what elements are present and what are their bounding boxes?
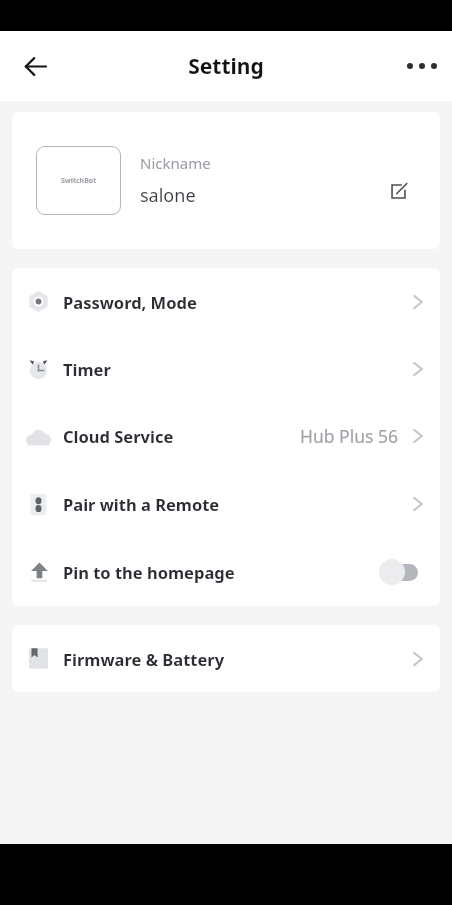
button[interactable]: More options <box>398 42 446 90</box>
button[interactable]: Edit nickname <box>381 174 415 208</box>
staticText: SwitchBot <box>61 176 97 186</box>
staticText: Cloud Service <box>63 425 174 447</box>
button[interactable]: Timer <box>12 335 440 402</box>
button[interactable]: Firmware & Battery <box>12 625 440 692</box>
staticText: Firmware & Battery <box>63 648 225 670</box>
staticText: Nickname <box>140 153 211 173</box>
staticText: Pin to the homepage <box>63 561 235 583</box>
button[interactable]: Pin to the homepage <box>12 538 440 606</box>
button[interactable]: Back <box>11 42 59 90</box>
button[interactable]: Pair with a Remote <box>12 470 440 538</box>
button[interactable]: Cloud Service <box>12 402 440 470</box>
staticText: salone <box>140 183 196 208</box>
staticText: Hub Plus 56 <box>300 424 398 448</box>
staticText: Password, Mode <box>63 291 197 313</box>
staticText: Setting <box>188 52 264 81</box>
button[interactable]: Password, Mode <box>12 268 440 335</box>
staticText: Timer <box>63 358 111 380</box>
staticText: Pair with a Remote <box>63 493 220 515</box>
